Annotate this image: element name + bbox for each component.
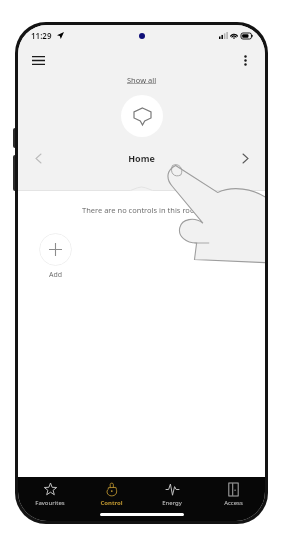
button[interactable]: Menu [25,47,51,73]
button[interactable]: Control [82,481,140,509]
button[interactable]: Energy [143,481,201,509]
staticText: There are no controls in this room [82,205,202,215]
button[interactable]: Previous room [27,147,49,169]
staticText: Access [224,499,243,507]
button[interactable]: More options [232,47,258,73]
staticText: Favourites [35,499,65,507]
button[interactable]: Access [204,481,262,509]
staticText: Control [100,499,123,507]
button[interactable]: Favourites [21,481,79,509]
button[interactable]: Home [121,95,163,137]
staticText: Energy [162,499,182,507]
staticText: Add [49,270,63,280]
button[interactable]: Show all [123,74,161,86]
staticText: Show all [127,75,157,85]
staticText: Home [49,152,234,164]
button[interactable]: Next room [234,147,256,169]
staticText: 11:29 [31,30,52,41]
button[interactable]: Add [39,233,72,280]
